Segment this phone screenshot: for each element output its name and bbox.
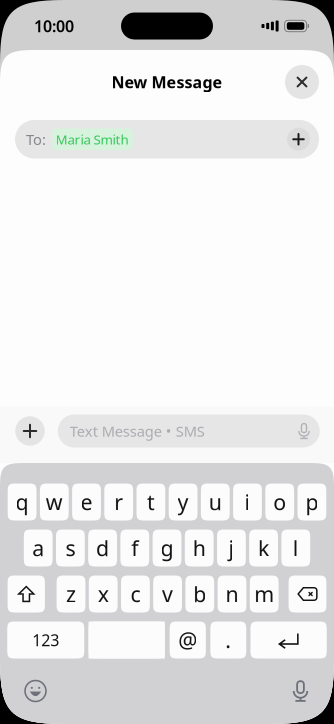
button[interactable]: j [217, 529, 246, 566]
button[interactable]: To: [15, 120, 319, 158]
button[interactable]: f [120, 529, 149, 566]
button[interactable]: t [136, 483, 165, 520]
button[interactable]: n [218, 575, 246, 612]
button[interactable]: o [265, 483, 294, 520]
staticText: Text Message • SMS [70, 421, 205, 441]
button[interactable]: g [153, 529, 181, 566]
staticText: s [65, 534, 75, 562]
staticText: g [160, 534, 173, 562]
button[interactable]: i [233, 483, 262, 520]
staticText: i [244, 488, 250, 516]
staticText: To: [26, 129, 46, 149]
staticText: t [147, 488, 155, 516]
button[interactable]: Shift [8, 575, 45, 612]
staticText: m [254, 580, 274, 608]
staticText: f [131, 534, 138, 562]
button[interactable]: Dictation [279, 671, 322, 711]
button[interactable]: k [249, 529, 278, 566]
staticText: @ [178, 626, 197, 654]
staticText: u [209, 488, 222, 516]
staticText: l [293, 534, 299, 562]
button[interactable]: c [121, 575, 150, 612]
button[interactable]: h [185, 529, 214, 566]
staticText: p [305, 488, 318, 516]
staticText: n [225, 580, 238, 608]
button[interactable]: v [153, 575, 182, 612]
staticText: j [228, 534, 234, 562]
staticText: h [193, 534, 206, 562]
staticText: r [114, 488, 123, 516]
button[interactable]: Numbers [7, 621, 84, 658]
button[interactable]: b [185, 575, 214, 612]
staticText: Maria Smith [55, 130, 128, 148]
button[interactable]: . [210, 621, 246, 658]
staticText: y [178, 488, 189, 516]
button[interactable]: z [57, 575, 85, 612]
staticText: . [225, 626, 231, 654]
button[interactable]: Delete [289, 575, 326, 612]
button[interactable]: q [8, 483, 36, 520]
staticText: x [98, 580, 109, 608]
staticText: d [96, 534, 109, 562]
staticText: New Message [111, 71, 222, 93]
button[interactable]: u [201, 483, 230, 520]
staticText: c [130, 580, 140, 608]
button[interactable]: e [72, 483, 101, 520]
button[interactable]: p [297, 483, 326, 520]
staticText: a [32, 534, 44, 562]
button[interactable]: @ [170, 621, 206, 658]
button[interactable]: d [88, 529, 117, 566]
staticText: w [46, 488, 63, 516]
button[interactable]: w [40, 483, 69, 520]
staticText: v [162, 580, 173, 608]
staticText: b [193, 580, 206, 608]
button[interactable]: Close [285, 65, 319, 99]
button[interactable]: y [169, 483, 197, 520]
button[interactable]: x [89, 575, 118, 612]
button[interactable]: Emoji keyboard [14, 671, 57, 711]
staticText: k [258, 534, 269, 562]
button[interactable]: a [24, 529, 53, 566]
button[interactable]: Add attachment [15, 416, 45, 446]
staticText: q [16, 488, 29, 516]
button[interactable]: r [104, 483, 133, 520]
staticText: o [273, 488, 286, 516]
staticText: e [80, 488, 92, 516]
button[interactable]: m [250, 575, 279, 612]
staticText: z [66, 580, 76, 608]
staticText: 10:00 [34, 15, 74, 37]
staticText: 123 [32, 629, 59, 651]
button[interactable]: Text Message • SMS [58, 414, 320, 447]
button[interactable]: s [56, 529, 85, 566]
button[interactable]: Return [250, 621, 327, 658]
button[interactable]: l [281, 529, 310, 566]
